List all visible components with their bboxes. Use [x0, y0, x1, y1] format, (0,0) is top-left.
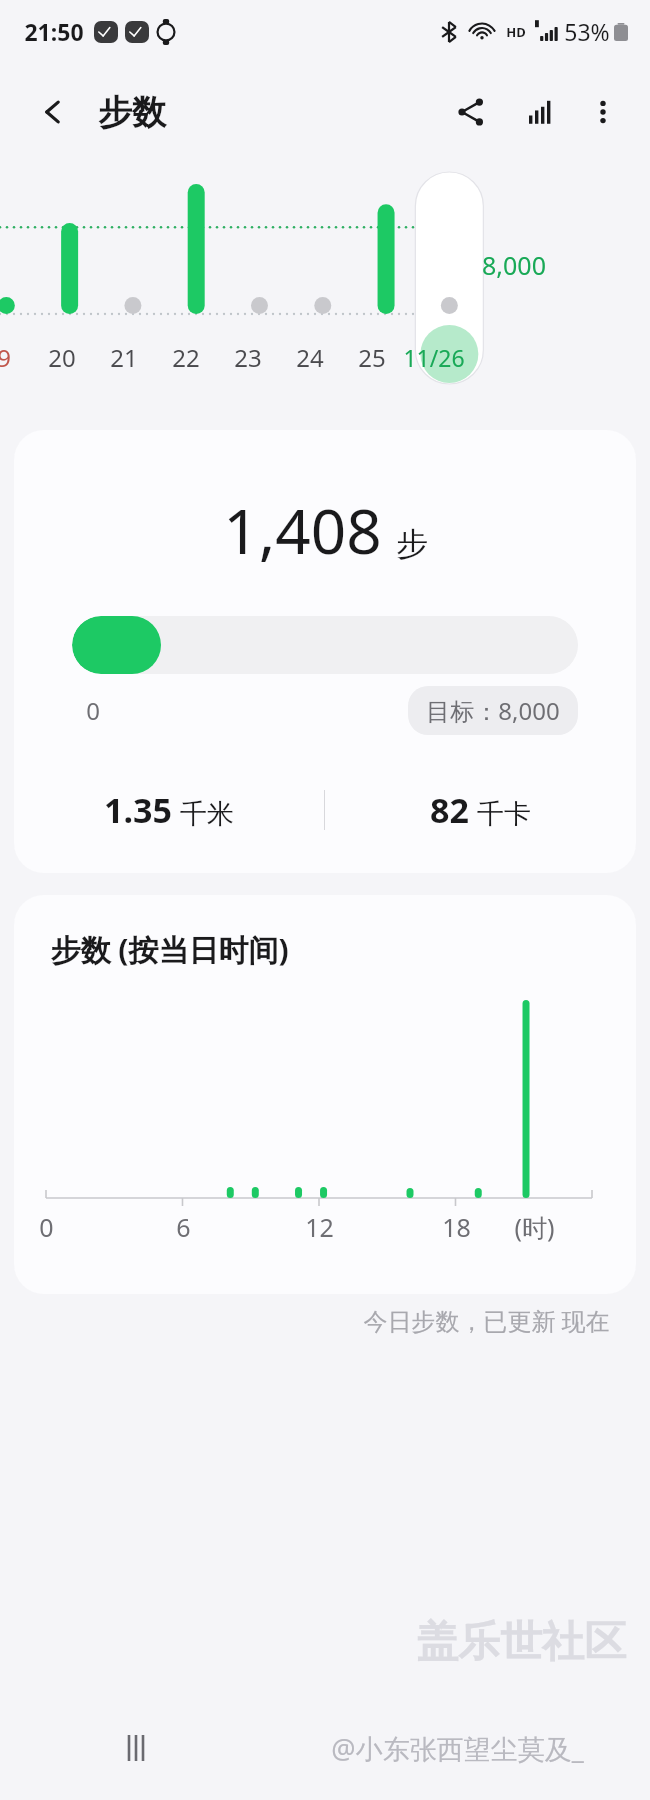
- staticText: 目标：8,000: [426, 694, 560, 727]
- staticText: 21:50: [24, 16, 84, 47]
- staticText: 千卡: [477, 797, 531, 831]
- button[interactable]: 20: [28, 340, 96, 374]
- button[interactable]: Recents: [110, 1726, 170, 1770]
- staticText: 21: [110, 341, 138, 374]
- staticText: 步数: [98, 91, 166, 134]
- staticText: @小东张西望尘莫及_: [331, 1730, 584, 1767]
- staticText: 12: [305, 1210, 334, 1244]
- button[interactable]: Chart: [514, 85, 568, 139]
- button[interactable]: More options: [578, 87, 628, 137]
- staticText: 盖乐世社区: [416, 1616, 626, 1669]
- staticText: 6: [176, 1210, 191, 1244]
- staticText: 0: [39, 1210, 54, 1244]
- staticText: 1.35: [104, 787, 172, 833]
- staticText: 25: [358, 341, 386, 374]
- button[interactable]: 25: [338, 340, 406, 374]
- button[interactable]: 1,408: [14, 430, 636, 873]
- staticText: 1,408: [223, 488, 382, 572]
- staticText: 8,000: [482, 248, 546, 282]
- staticText: 24: [296, 341, 324, 374]
- staticText: (时): [514, 1210, 555, 1244]
- button[interactable]: 步数 (按当日时间): [14, 895, 636, 1294]
- button[interactable]: 9: [0, 340, 38, 374]
- staticText: 53%: [564, 16, 610, 47]
- staticText: 11/26: [403, 342, 465, 373]
- staticText: 0: [86, 694, 100, 727]
- button[interactable]: Back: [30, 89, 76, 135]
- staticText: 步数 (按当日时间): [50, 929, 289, 970]
- staticText: 20: [48, 341, 76, 374]
- button[interactable]: 11/26: [400, 340, 468, 374]
- staticText: 23: [234, 341, 262, 374]
- staticText: 22: [172, 341, 200, 374]
- staticText: 今日步数，已更新 现在: [363, 1304, 610, 1337]
- staticText: 9: [0, 341, 11, 374]
- staticText: 步: [396, 524, 428, 564]
- button[interactable]: Share: [444, 85, 498, 139]
- staticText: HD: [506, 23, 526, 41]
- button[interactable]: 23: [214, 340, 282, 374]
- button[interactable]: 21: [90, 340, 158, 374]
- button[interactable]: 22: [152, 340, 220, 374]
- staticText: 82: [430, 787, 469, 833]
- staticText: 千米: [180, 797, 234, 831]
- staticText: 18: [442, 1210, 471, 1244]
- button[interactable]: 24: [276, 340, 344, 374]
